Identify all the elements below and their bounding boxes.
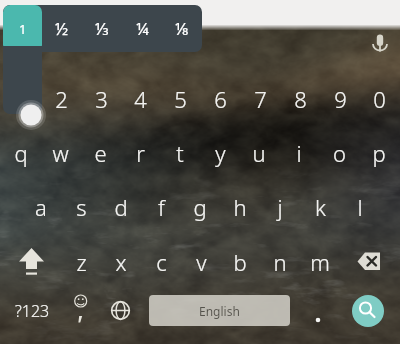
button[interactable]: ½ [42,5,82,52]
button[interactable]: Backspace [349,241,389,281]
staticText: ½ [55,17,69,40]
staticText: i [296,138,302,168]
staticText: ⅓ [95,17,110,40]
button[interactable]: ?123 [8,294,56,328]
staticText: s [76,192,87,222]
button[interactable]: 8 [280,72,320,126]
staticText: 6 [214,84,227,114]
button[interactable]: u [239,126,279,180]
button[interactable]: t [160,126,200,180]
button[interactable]: 7 [240,72,280,126]
button[interactable]: s [61,180,101,234]
button[interactable]: v [181,235,221,289]
staticText: 5 [174,84,187,114]
staticText: w [52,138,69,168]
button[interactable]: 4 [120,72,160,126]
staticText: English [199,303,240,319]
button[interactable]: y [200,126,240,180]
staticText: a [35,192,47,222]
button[interactable]: q [1,126,41,180]
button[interactable]: ⅓ [82,5,122,52]
staticText: z [76,247,87,277]
button[interactable]: r [120,126,160,180]
button[interactable]: e [80,126,120,180]
staticText: 1 [19,20,27,38]
button[interactable]: ¼ [122,5,162,52]
staticText: x [115,247,127,277]
staticText: 7 [254,84,267,114]
button[interactable]: 6 [200,72,240,126]
button[interactable]: Search [352,295,384,327]
button[interactable]: j [260,180,300,234]
staticText: m [310,247,330,277]
staticText: 0 [373,84,386,114]
staticText: u [252,138,266,168]
staticText: t [176,138,184,168]
button[interactable]: Shift [12,242,52,282]
staticText: k [315,192,326,222]
button[interactable]: n [260,235,300,289]
staticText: h [233,192,247,222]
button[interactable]: m [300,235,340,289]
button[interactable]: 0 [359,72,399,126]
button[interactable]: Emoji [64,291,98,325]
button[interactable]: b [220,235,260,289]
button[interactable]: w [40,126,80,180]
button[interactable] [302,296,334,328]
button[interactable]: d [101,180,141,234]
staticText: 1 [15,84,28,114]
button[interactable]: Voice input [368,31,392,55]
button[interactable]: 1 [1,72,41,126]
button[interactable]: x [101,235,141,289]
button[interactable]: a [21,180,61,234]
button[interactable]: English [149,295,290,326]
button[interactable]: o [319,126,359,180]
staticText: r [136,138,145,168]
staticText: ?123 [15,300,50,322]
staticText: l [357,192,363,222]
button[interactable]: 5 [160,72,200,126]
staticText: j [277,192,283,222]
button[interactable]: k [300,180,340,234]
button[interactable]: Change language [103,293,137,327]
button[interactable]: h [220,180,260,234]
staticText: n [273,247,287,277]
button[interactable]: z [61,235,101,289]
staticText: v [196,247,207,277]
staticText: 8 [294,84,307,114]
button[interactable]: p [359,126,399,180]
button[interactable]: i [279,126,319,180]
staticText: e [94,138,107,168]
staticText: ¼ [136,17,149,40]
staticText: ⅛ [175,17,190,40]
staticText: d [114,192,128,222]
staticText: f [158,192,165,222]
staticText: o [333,138,346,168]
staticText: q [14,138,28,168]
staticText: b [233,247,247,277]
button[interactable]: 9 [320,72,360,126]
staticText: p [372,138,386,168]
staticText: 9 [334,84,347,114]
button[interactable]: 1 [3,5,42,52]
button[interactable]: 2 [41,72,81,126]
button[interactable]: 3 [81,72,121,126]
button[interactable]: ⅛ [162,5,202,52]
button[interactable]: f [141,180,181,234]
staticText: 2 [55,84,68,114]
staticText: 4 [134,84,147,114]
staticText: y [215,138,226,168]
button[interactable]: l [340,180,380,234]
staticText: 3 [95,84,108,114]
button[interactable]: c [141,235,181,289]
button[interactable]: g [180,180,220,234]
staticText: c [156,247,167,277]
staticText: g [193,192,207,222]
